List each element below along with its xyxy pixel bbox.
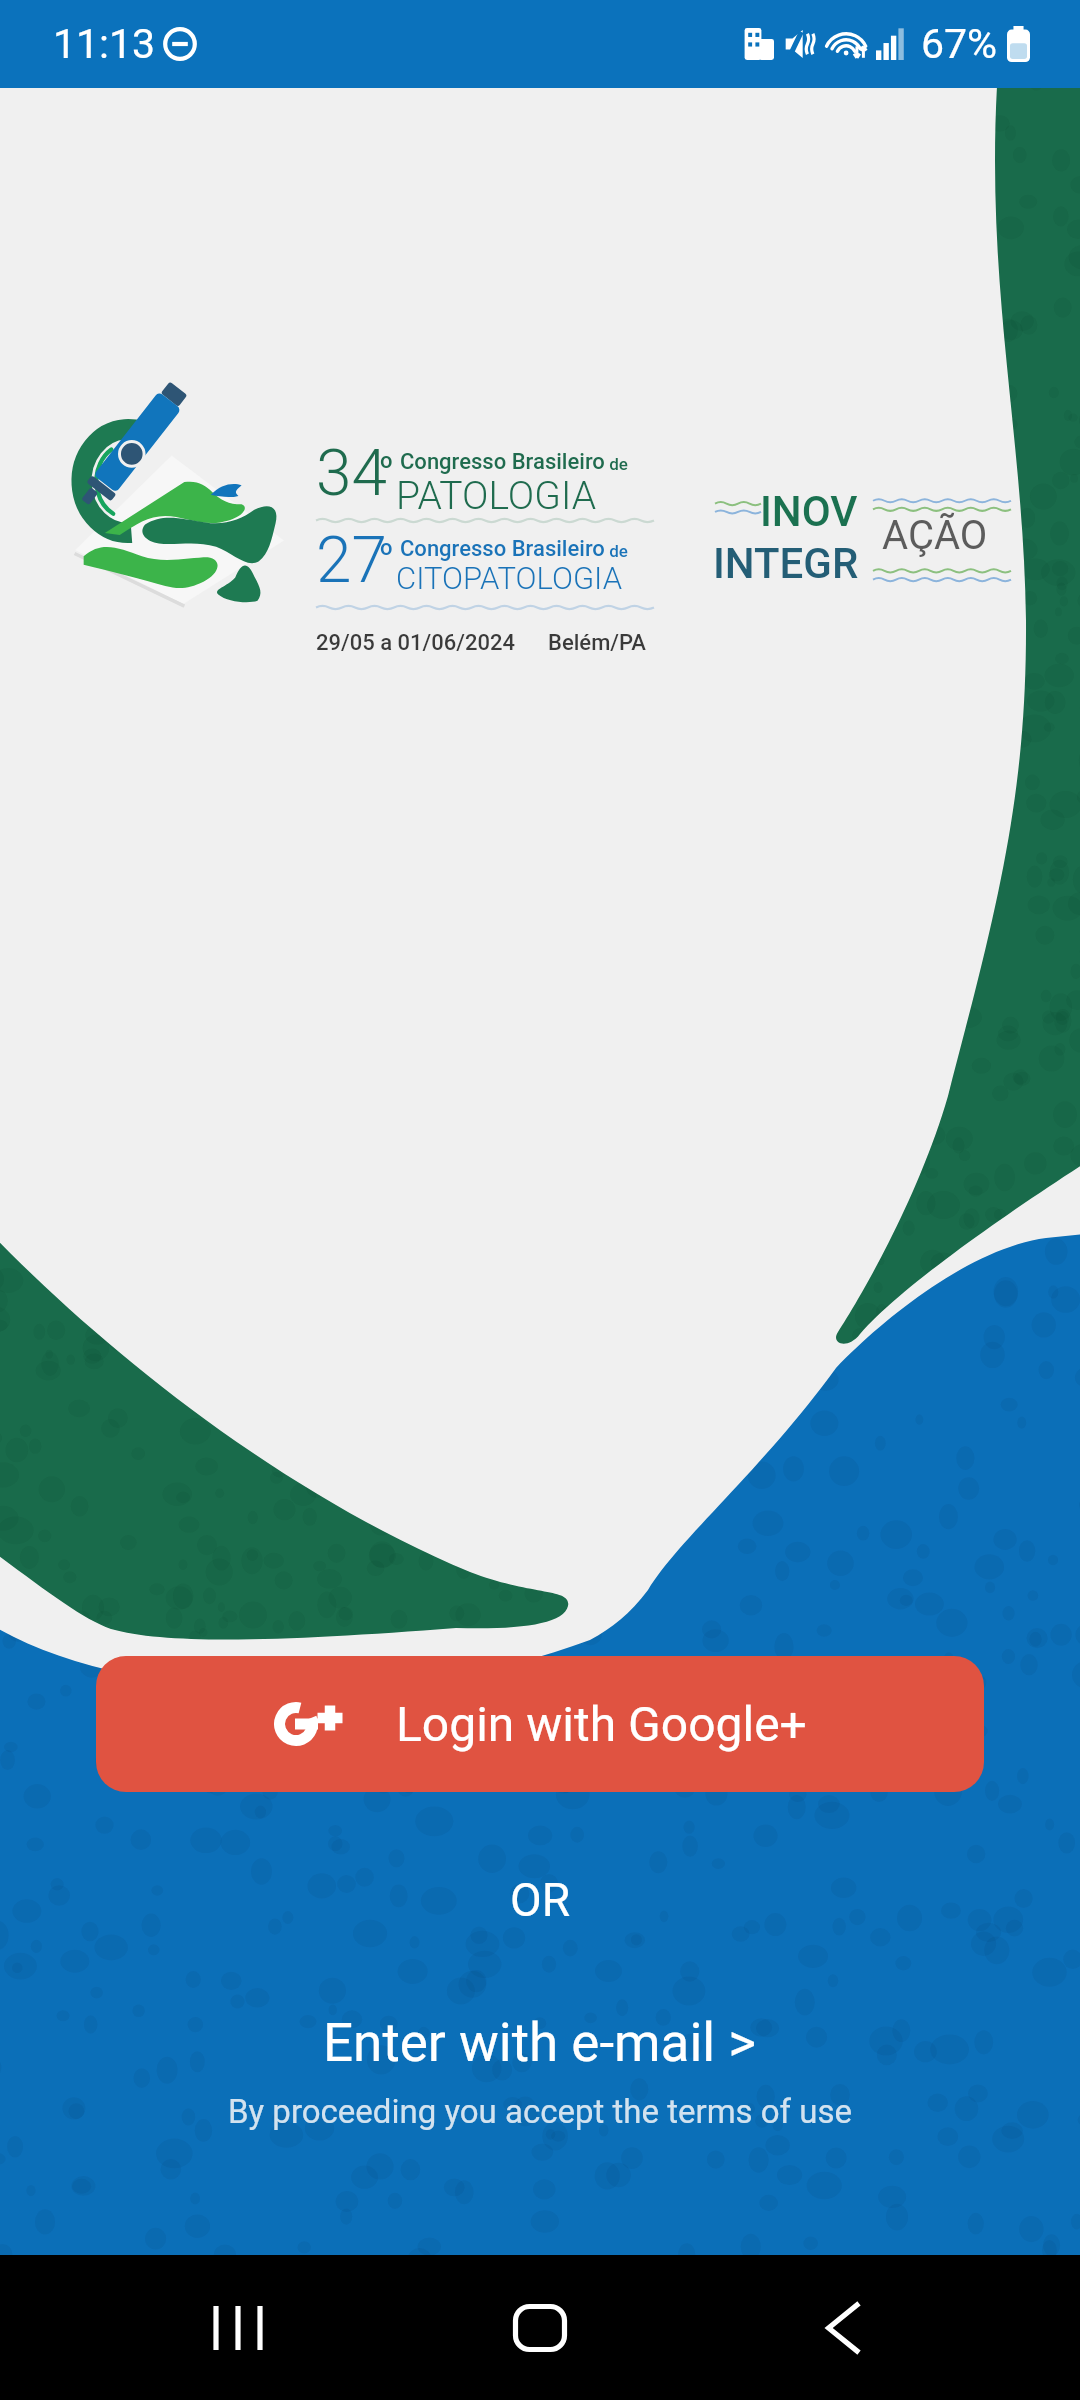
staticText: CITOPATOLOGIA: [396, 560, 623, 596]
staticText: Congresso Brasileiro: [400, 449, 605, 475]
staticText: PATOLOGIA: [396, 473, 597, 519]
staticText: o: [380, 448, 393, 474]
button[interactable]: Enter with e-mail >: [323, 2012, 757, 2074]
staticText: INOV: [760, 487, 858, 536]
staticText: 11:13: [53, 20, 156, 68]
staticText: 67%: [921, 20, 998, 68]
staticText: de: [605, 454, 628, 474]
staticText: Belém/PA: [548, 630, 646, 656]
button[interactable]: Recent apps: [0, 2255, 474, 2400]
staticText: OR: [510, 1873, 570, 1927]
button[interactable]: Back: [606, 2255, 1080, 2400]
staticText: AÇÃO: [882, 512, 988, 559]
staticText: 29/05 a 01/06/2024: [316, 630, 516, 656]
staticText: o: [380, 535, 393, 561]
staticText: Congresso Brasileiro: [400, 536, 605, 562]
staticText: de: [605, 541, 628, 561]
staticText: 34: [316, 436, 387, 498]
staticText: INTEGR: [713, 539, 859, 588]
button[interactable]: Home: [474, 2255, 606, 2400]
staticText: By proceeding you accept the terms of us…: [228, 2092, 852, 2131]
button[interactable]: Login with Google+: [96, 1656, 984, 1792]
staticText: Login with Google+: [396, 1696, 807, 1752]
staticText: 27: [316, 523, 387, 585]
